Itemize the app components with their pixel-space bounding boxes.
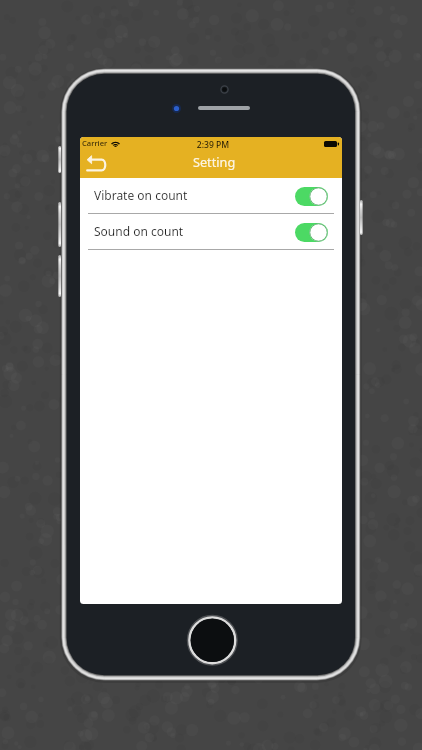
- button[interactable]: Home: [186, 614, 238, 666]
- button[interactable]: Sound on count: [80, 214, 342, 250]
- button[interactable]: Toggle: [295, 187, 328, 206]
- staticText: Setting: [193, 153, 236, 170]
- button[interactable]: Vibrate on count: [80, 178, 342, 214]
- staticText: Sound on count: [94, 223, 184, 239]
- button[interactable]: Toggle: [295, 223, 328, 242]
- button[interactable]: Back: [83, 149, 109, 177]
- staticText: Carrier: [82, 138, 108, 148]
- staticText: Vibrate on count: [94, 187, 188, 203]
- staticText: 2:39 PM: [82, 139, 342, 150]
